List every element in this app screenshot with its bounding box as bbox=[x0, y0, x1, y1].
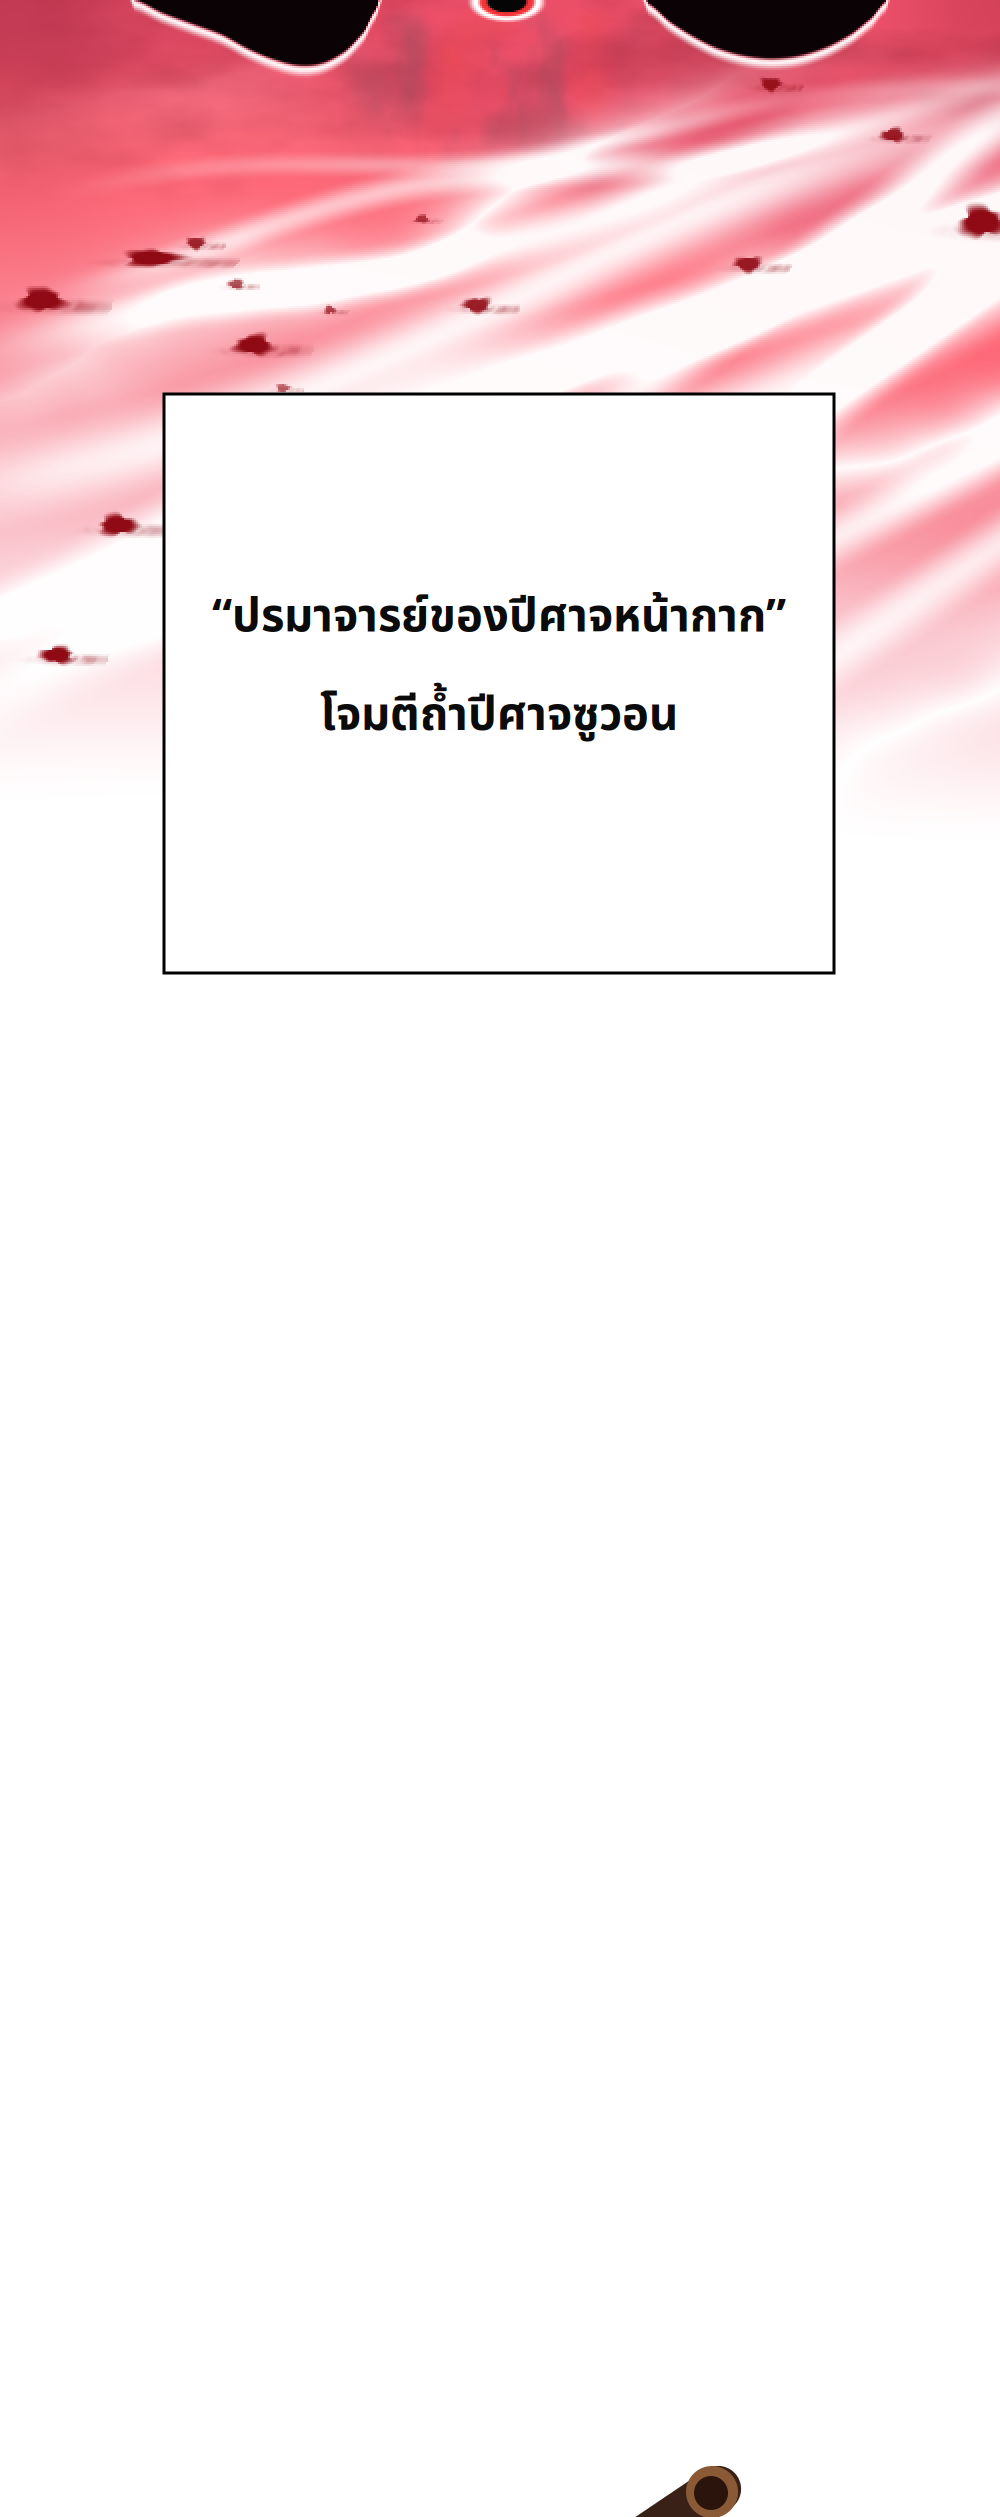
staticText: “ปรมาจารย์ของปีศาจหน้ากาก” bbox=[212, 583, 786, 651]
staticText: โจมตีถ้ำปีศาจซูวอน bbox=[320, 681, 678, 750]
